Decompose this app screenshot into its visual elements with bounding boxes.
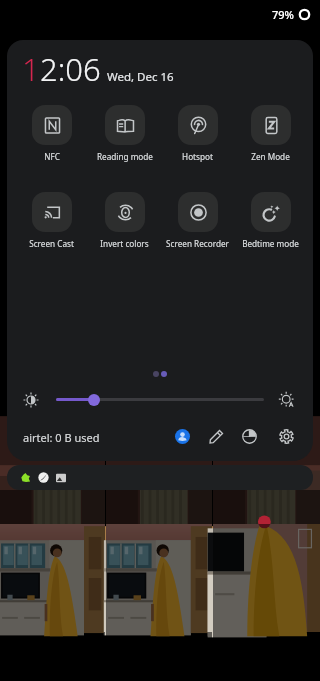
staticText: Hotspot: [182, 151, 213, 162]
staticText: Wed, Dec 16: [107, 69, 174, 85]
other: Brightness: [23, 392, 39, 408]
staticText: Bedtime mode: [242, 238, 299, 249]
staticText: 1: [22, 48, 40, 90]
staticText: NFC: [44, 151, 60, 162]
button[interactable]: Invert colors: [88, 192, 161, 249]
button[interactable]: airtel: 0 B used: [23, 430, 100, 445]
button[interactable]: Bedtime mode: [234, 192, 307, 249]
staticText: 2:06: [40, 48, 101, 90]
button[interactable]: NFC: [15, 105, 88, 162]
button[interactable]: Settings: [275, 425, 297, 447]
staticText: Screen Cast: [29, 238, 74, 249]
button[interactable]: Hotspot: [161, 105, 234, 162]
button[interactable]: Zen Mode: [234, 105, 307, 162]
button[interactable]: Power: [238, 425, 260, 447]
button[interactable]: Screen Recorder: [161, 192, 234, 249]
button[interactable]: Reading mode: [88, 105, 161, 162]
staticText: Reading mode: [97, 151, 153, 162]
staticText: Zen Mode: [251, 151, 290, 162]
staticText: Screen Recorder: [166, 238, 229, 249]
button[interactable]: Edit: [205, 425, 227, 447]
staticText: airtel: 0 B used: [23, 430, 100, 445]
other: Auto brightness: [279, 392, 295, 408]
staticText: 79%: [272, 7, 294, 22]
button[interactable]: User: [171, 425, 193, 447]
button[interactable]: Screen Cast: [15, 192, 88, 249]
staticText: Invert colors: [100, 238, 149, 249]
